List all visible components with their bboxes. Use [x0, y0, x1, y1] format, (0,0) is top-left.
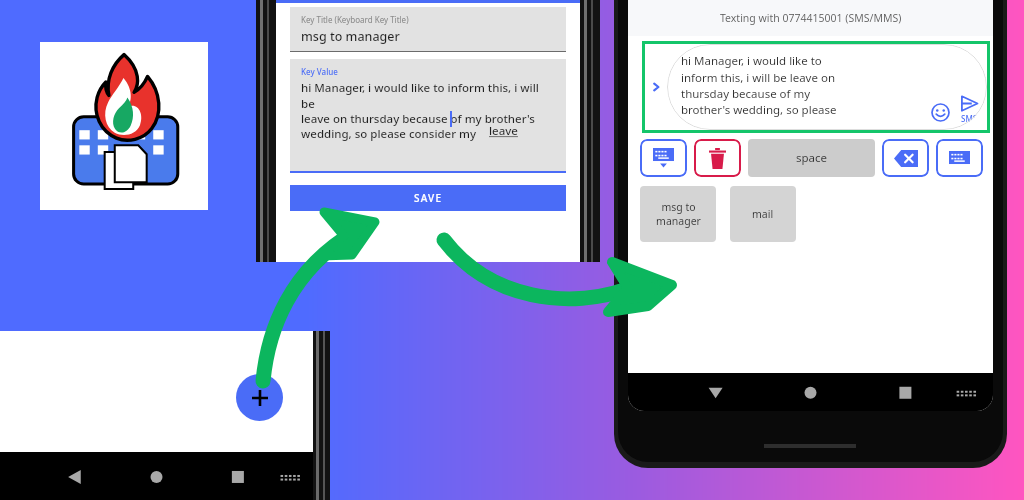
- button[interactable]: SAVE: [290, 185, 566, 211]
- staticText: SAVE: [414, 191, 443, 205]
- button[interactable]: Backspace: [882, 139, 929, 177]
- staticText: Texting with 0774415001 (SMS/MMS): [720, 11, 902, 25]
- button[interactable]: Delete all: [694, 139, 741, 177]
- button[interactable]: hi Manager, i would like to inform this,…: [667, 44, 987, 130]
- button[interactable]: Add new key: [236, 374, 283, 421]
- staticText: msg to manager: [301, 28, 400, 45]
- staticText: space: [796, 150, 828, 166]
- button[interactable]: Key Value: [290, 59, 566, 171]
- staticText: Key Value: [301, 66, 338, 77]
- button[interactable]: Show keyboard: [640, 139, 687, 177]
- button[interactable]: Send SMS: [960, 94, 979, 124]
- staticText: Key Title (Keyboard Key Title): [301, 14, 409, 25]
- button[interactable]: space: [748, 139, 875, 177]
- staticText: SMS: [961, 113, 978, 124]
- button[interactable]: Key Title (Keyboard Key Title): [290, 7, 566, 51]
- staticText: leave: [489, 123, 518, 139]
- button[interactable]: Switch keyboard: [936, 139, 983, 177]
- staticText: mail: [752, 207, 774, 221]
- button[interactable]: Emoji: [928, 100, 952, 124]
- button[interactable]: msg to manager: [640, 186, 716, 242]
- button[interactable]: Expand: [645, 44, 667, 130]
- staticText: hi Manager, i would like to inform this,…: [301, 80, 555, 141]
- button[interactable]: mail: [730, 186, 796, 242]
- staticText: hi Manager, i would like to inform this,…: [681, 53, 837, 117]
- staticText: msg to manager: [656, 200, 701, 228]
